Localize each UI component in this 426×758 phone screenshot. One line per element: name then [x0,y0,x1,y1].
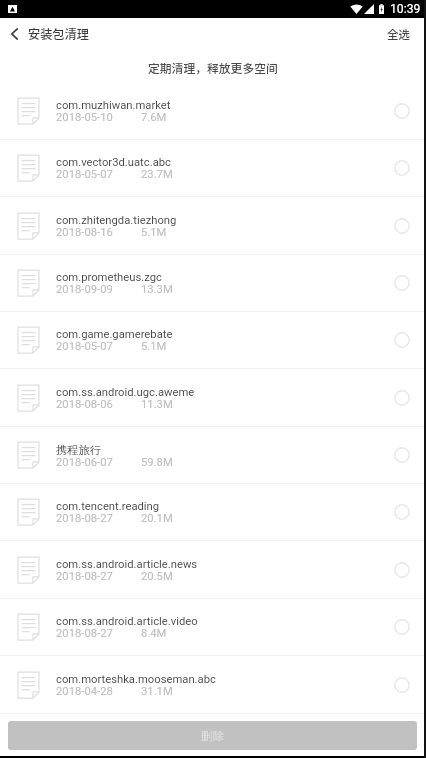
staticText: 2018-08-27 [56,627,113,640]
button[interactable]: com.game.gamerebate [0,312,426,368]
staticText: 2018-05-07 [56,168,113,181]
staticText: 2018-09-09 [56,283,113,296]
staticText: 11.3M [141,398,173,411]
staticText: 2018-05-10 [56,111,113,124]
staticText: 携程旅行 [56,443,101,457]
staticText: 31.1M [141,685,173,698]
button[interactable]: Back [0,20,95,50]
staticText: 2018-08-27 [56,570,113,583]
staticText: 10:39 [390,2,421,16]
other: Select [394,160,410,176]
button[interactable]: com.zhitengda.tiezhong [0,197,426,254]
staticText: com.muzhiwan.market [56,99,171,112]
staticText: 20.5M [141,570,173,583]
button[interactable]: com.ss.android.article.video [0,599,426,655]
other: Select [394,103,410,119]
staticText: com.tencent.reading [56,500,160,513]
staticText: 2018-08-06 [56,398,113,411]
staticText: 5.1M [141,226,167,239]
button[interactable]: com.morteshka.mooseman.abc [0,656,426,713]
staticText: com.vector3d.uatc.abc [56,156,171,169]
staticText: com.ss.android.article.news [56,558,198,571]
button[interactable]: com.vector3d.uatc.abc [0,140,426,196]
staticText: 2018-08-27 [56,512,113,525]
other: Select [394,504,410,520]
staticText: 5.1M [141,340,167,353]
staticText: 2018-05-07 [56,340,113,353]
staticText: 23.7M [141,168,173,181]
staticText: 8.4M [141,627,167,640]
staticText: com.morteshka.mooseman.abc [56,673,216,686]
button[interactable]: com.ss.android.ugc.aweme [0,369,426,426]
staticText: 安装包清理 [28,25,89,43]
other: Select [394,677,410,693]
staticText: 2018-08-16 [56,226,113,239]
staticText: 全选 [387,26,410,43]
other: Select [394,619,410,635]
button[interactable]: com.muzhiwan.market [0,82,426,139]
staticText: com.zhitengda.tiezhong [56,214,177,227]
other: Select [394,562,410,578]
staticText: 59.8M [141,456,173,469]
button[interactable]: com.tencent.reading [0,484,426,540]
button[interactable]: 全选 [374,20,426,51]
staticText: 13.3M [141,283,173,296]
staticText: 20.1M [141,512,173,525]
staticText: 7.6M [141,111,167,124]
staticText: com.ss.android.article.video [56,615,198,628]
other: Back [11,28,18,40]
staticText: 定期清理，释放更多空间 [148,59,278,76]
staticText: com.ss.android.ugc.aweme [56,386,195,399]
button[interactable]: com.ss.android.article.news [0,541,426,598]
other: Select [394,332,410,348]
staticText: com.prometheus.zgc [56,271,162,284]
staticText: 删除 [201,729,224,743]
button[interactable]: com.prometheus.zgc [0,255,426,311]
staticText: 2018-06-07 [56,456,113,469]
staticText: com.game.gamerebate [56,328,173,341]
other: Select [394,390,410,406]
other: Select [394,447,410,463]
other: Select [394,275,410,291]
button[interactable]: 携程旅行 [0,427,426,483]
other: Select [394,218,410,234]
staticText: 2018-04-28 [56,685,113,698]
